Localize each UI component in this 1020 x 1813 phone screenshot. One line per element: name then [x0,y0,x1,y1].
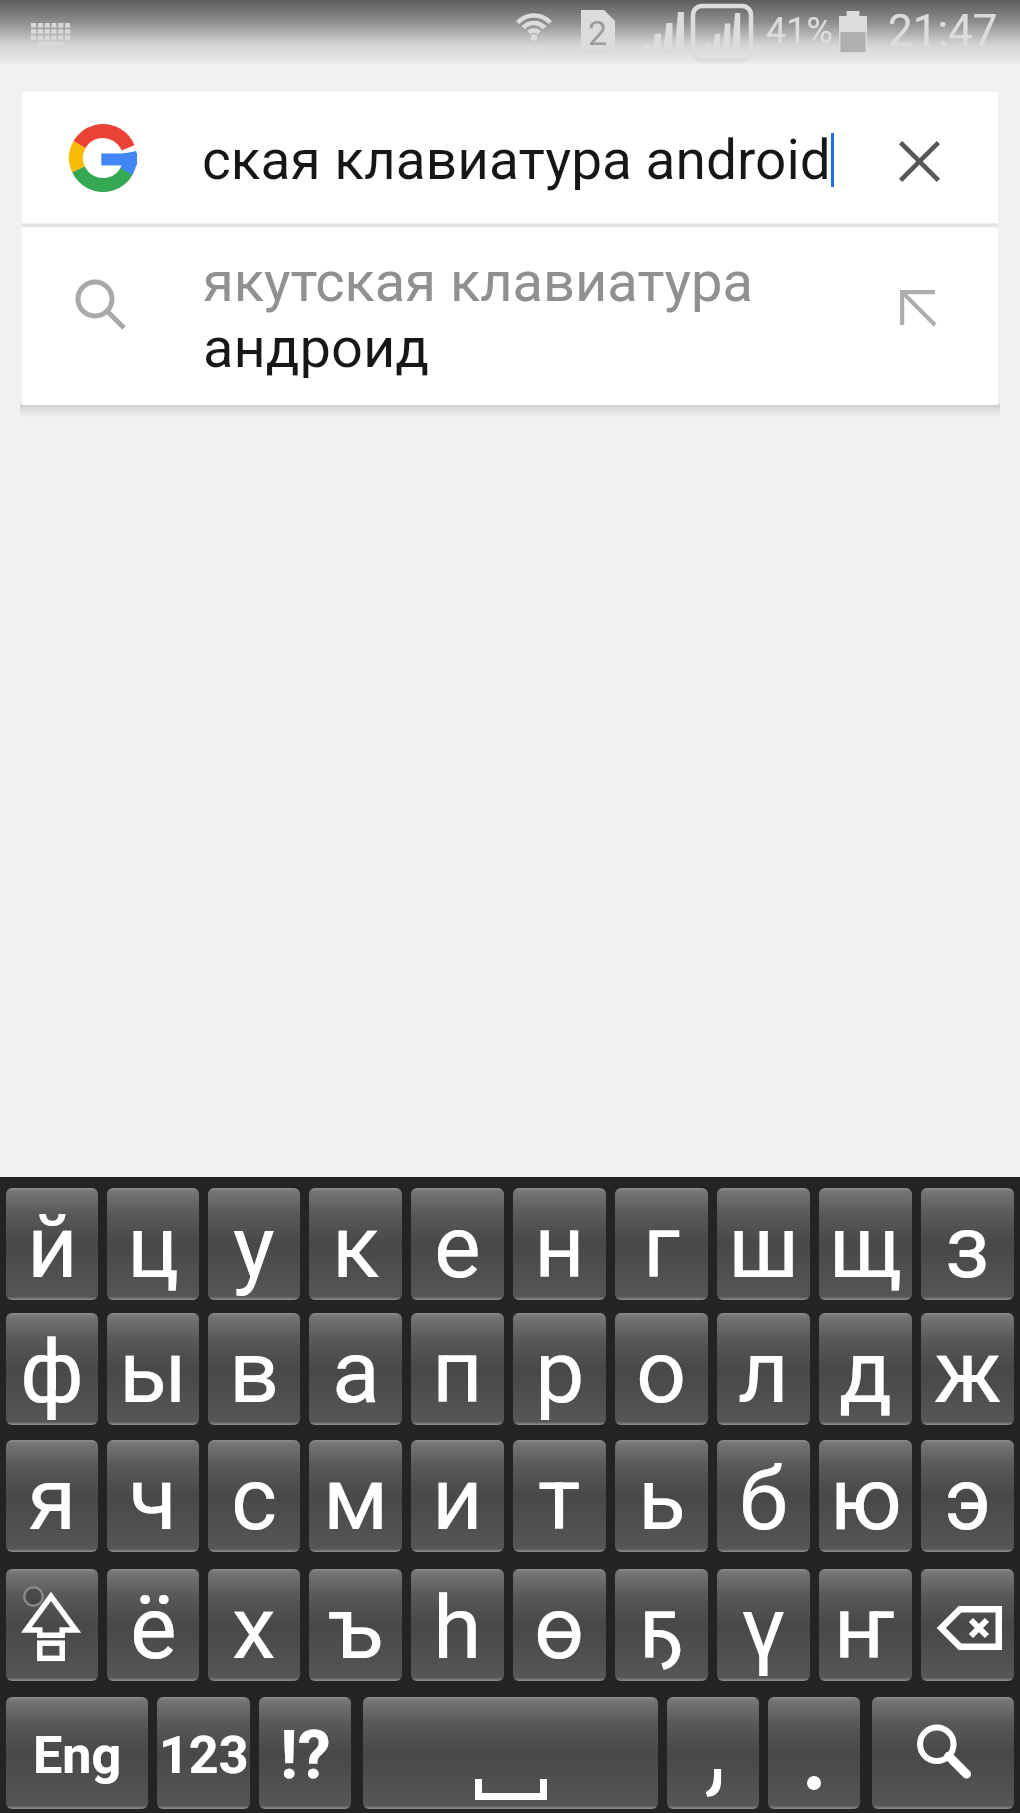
staticText: й [27,1195,78,1298]
button[interactable]: м [309,1440,402,1552]
staticText: якутская клавиатура [203,249,754,315]
button[interactable]: с [208,1440,300,1552]
staticText: ы [119,1320,188,1423]
button[interactable]: ё [107,1569,199,1681]
button[interactable]: ш [717,1188,810,1300]
button[interactable]: Eng [6,1697,148,1809]
staticText: 21:47 [888,5,998,57]
staticText: щ [829,1195,902,1298]
button[interactable]: р [513,1313,606,1425]
button[interactable]: ж [921,1313,1014,1425]
staticText: !? [280,1717,331,1794]
button[interactable]: в [208,1313,300,1425]
staticText: ч [129,1447,177,1550]
button[interactable]: т [513,1440,606,1552]
staticText: а [332,1320,380,1423]
staticText: х [232,1576,276,1679]
button[interactable]: ф [6,1313,98,1425]
staticText: я [28,1447,77,1550]
button[interactable]: ъ [309,1569,402,1681]
button[interactable]: ҕ [615,1569,708,1681]
button[interactable]: л [717,1313,810,1425]
staticText: ё [130,1576,177,1679]
staticText: ь [638,1447,686,1550]
button[interactable]: э [921,1440,1014,1552]
button[interactable]: з [921,1188,1014,1300]
button[interactable]: Use this suggestion [878,228,998,405]
button[interactable]: щ [819,1188,912,1300]
staticText: ҕ [639,1576,684,1679]
button[interactable]: ь [615,1440,708,1552]
button[interactable]: д [819,1313,912,1425]
button[interactable]: Comma [667,1697,759,1809]
staticText: к [332,1195,380,1298]
staticText: э [944,1447,992,1550]
staticText: е [434,1195,481,1298]
button[interactable]: ч [107,1440,199,1552]
button[interactable]: Clear search [850,92,998,223]
button[interactable]: у [208,1188,300,1300]
button[interactable]: Shift [6,1569,98,1681]
button[interactable]: ц [107,1188,199,1300]
staticText: ц [127,1195,180,1298]
staticText: андроид [203,315,430,381]
staticText: о [636,1320,687,1423]
staticText: л [738,1320,789,1423]
staticText: 41% [766,10,833,52]
button[interactable]: ү [717,1569,810,1681]
button[interactable]: Space [363,1697,658,1809]
staticText: ү [741,1576,786,1679]
staticText: т [538,1447,581,1550]
button[interactable]: к [309,1188,402,1300]
button[interactable]: ө [513,1569,606,1681]
staticText: р [535,1320,585,1423]
staticText: 123 [159,1725,249,1786]
staticText: ф [20,1320,84,1423]
staticText: с [231,1447,278,1550]
staticText: ө [534,1576,585,1679]
staticText: ж [934,1320,1002,1423]
button[interactable]: ю [819,1440,912,1552]
button[interactable]: Period [768,1697,860,1809]
staticText: и [432,1447,483,1550]
button[interactable]: н [513,1188,606,1300]
staticText: Eng [33,1725,122,1786]
staticText: д [839,1320,893,1423]
button[interactable]: й [6,1188,98,1300]
staticText: б [739,1447,788,1550]
button[interactable]: ҥ [819,1569,912,1681]
button[interactable]: е [411,1188,504,1300]
staticText: п [432,1320,483,1423]
staticText: н [534,1195,585,1298]
staticText: һ [433,1576,482,1679]
button[interactable]: о [615,1313,708,1425]
button[interactable]: х [208,1569,300,1681]
staticText: в [229,1320,280,1423]
staticText: у [233,1195,275,1298]
staticText: з [945,1195,990,1298]
staticText: ҥ [834,1576,897,1679]
button[interactable]: Search [872,1697,1014,1809]
button[interactable]: и [411,1440,504,1552]
staticText: ская клавиатура android [202,128,831,192]
button[interactable]: !? [259,1697,351,1809]
button[interactable]: я [6,1440,98,1552]
button[interactable]: якутская клавиатура [22,228,998,405]
staticText: ю [830,1447,902,1550]
button[interactable]: 123 [157,1697,250,1809]
button[interactable]: п [411,1313,504,1425]
button[interactable]: г [615,1188,708,1300]
button[interactable]: а [309,1313,402,1425]
button[interactable]: б [717,1440,810,1552]
staticText: м [323,1447,389,1550]
staticText: ш [728,1195,800,1298]
staticText: ъ [328,1576,383,1679]
staticText: 2 [588,13,608,53]
button[interactable]: Backspace [921,1569,1014,1681]
button[interactable]: ы [107,1313,199,1425]
button[interactable]: һ [411,1569,504,1681]
staticText: г [643,1195,680,1298]
